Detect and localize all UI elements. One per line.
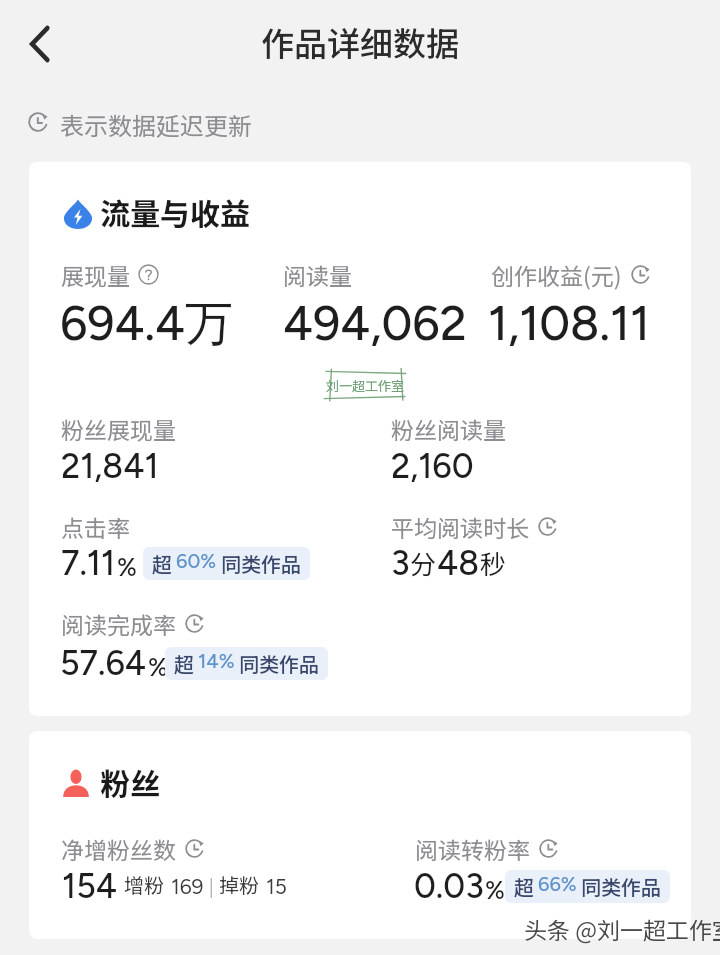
- staticText: 粉丝: [100, 760, 160, 803]
- staticText: 169: [171, 874, 204, 899]
- staticText: 掉粉: [219, 870, 259, 899]
- staticText: 表示数据延迟更新: [60, 107, 252, 142]
- staticText: 超: [174, 649, 194, 678]
- staticText: 阅读量: [283, 258, 352, 291]
- staticText: 创作收益(元): [491, 258, 622, 291]
- staticText: 超: [514, 872, 534, 901]
- staticText: 分: [410, 544, 437, 582]
- staticText: 14%: [198, 649, 235, 673]
- staticText: 2,160: [391, 446, 474, 487]
- staticText: 点击率: [61, 510, 130, 543]
- staticText: 60%: [176, 549, 217, 573]
- staticText: 1,108.11: [488, 294, 651, 352]
- button[interactable]: Back: [18, 20, 66, 68]
- staticText: %: [117, 552, 137, 582]
- staticText: 净增粉丝数: [61, 832, 176, 865]
- staticText: 同类作品: [221, 549, 301, 578]
- staticText: 154: [62, 866, 117, 907]
- staticText: 流量与收益: [100, 190, 250, 233]
- staticText: 7.11: [61, 543, 116, 584]
- staticText: 48: [437, 543, 480, 584]
- staticText: 粉丝阅读量: [391, 412, 506, 445]
- staticText: %: [148, 652, 168, 682]
- staticText: 21,841: [61, 446, 159, 487]
- staticText: 平均阅读时长: [391, 510, 529, 543]
- staticText: 阅读完成率: [61, 607, 176, 640]
- staticText: 刘一超工作室: [326, 376, 405, 395]
- staticText: 57.64: [60, 643, 147, 684]
- staticText: 694.4万: [60, 294, 234, 354]
- staticText: 秒: [480, 544, 507, 582]
- staticText: 同类作品: [239, 649, 319, 678]
- staticText: 阅读转粉率: [415, 832, 530, 865]
- staticText: 超: [152, 549, 172, 578]
- staticText: 作品详细数据: [261, 18, 459, 66]
- staticText: 头条 @刘一超工作室: [524, 912, 720, 945]
- staticText: 66%: [538, 872, 577, 896]
- staticText: 15: [266, 874, 287, 899]
- staticText: 3: [391, 543, 410, 584]
- staticText: 粉丝展现量: [61, 412, 176, 445]
- staticText: 494,062: [283, 294, 467, 352]
- staticText: 同类作品: [581, 872, 661, 901]
- staticText: 展现量: [61, 258, 130, 291]
- staticText: %: [485, 875, 505, 905]
- staticText: |: [209, 873, 214, 898]
- staticText: 增粉: [124, 870, 164, 899]
- staticText: 0.03: [414, 866, 484, 907]
